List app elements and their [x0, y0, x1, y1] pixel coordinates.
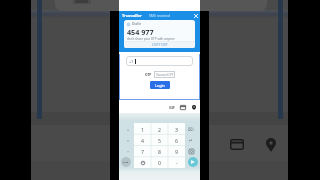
staticText: 0	[158, 159, 161, 166]
staticText: SMS received	[149, 13, 171, 18]
staticText: ÷	[127, 149, 130, 154]
staticText: 6	[175, 137, 178, 144]
staticText: GIF	[169, 105, 175, 110]
staticText: 3	[175, 126, 178, 133]
button[interactable]: 2	[151, 123, 168, 135]
button[interactable]: 9	[168, 146, 185, 157]
button[interactable]: GIF	[168, 103, 176, 111]
staticText: ↵	[189, 138, 193, 143]
button[interactable]: Emoji	[134, 157, 151, 168]
staticText: +1	[129, 59, 134, 64]
button[interactable]: COPY OTP	[124, 42, 195, 48]
staticText: ×	[127, 138, 130, 143]
staticText: Truecaller	[122, 13, 142, 18]
staticText: 4	[141, 137, 144, 144]
button[interactable]: Backspace	[185, 123, 197, 135]
staticText: don't share your OTP with anyone	[127, 37, 175, 41]
staticText: 1	[141, 126, 144, 133]
staticText: +	[127, 127, 130, 132]
staticText: ?123	[123, 161, 129, 164]
staticText: COPY OTP	[152, 43, 168, 47]
button[interactable]: Close	[193, 13, 198, 18]
button[interactable]: Location	[190, 103, 198, 111]
button[interactable]: +1	[126, 56, 193, 66]
staticText: Password OTP	[156, 73, 174, 77]
button[interactable]: Login	[150, 81, 170, 89]
staticText: 8	[158, 148, 161, 155]
staticText: 2	[158, 126, 161, 133]
button[interactable]: 6	[168, 135, 185, 146]
button[interactable]: -	[168, 157, 185, 168]
staticText: Login	[155, 83, 165, 88]
staticText: 9	[175, 148, 178, 155]
button[interactable]: 8	[151, 146, 168, 157]
button[interactable]: 0	[151, 157, 168, 168]
button[interactable]: Truecaller	[119, 11, 200, 20]
button[interactable]: +	[123, 123, 134, 135]
staticText: Dial'in	[132, 22, 142, 26]
button[interactable]: 1	[134, 123, 151, 135]
button[interactable]: 7	[134, 146, 151, 157]
button[interactable]: 5	[151, 135, 168, 146]
button[interactable]: Send	[188, 157, 198, 167]
staticText: OTP	[145, 73, 152, 77]
button[interactable]: Password OTP	[154, 71, 175, 78]
staticText: ⌦	[188, 127, 194, 132]
button[interactable]: ×	[123, 135, 134, 146]
staticText: 5	[158, 137, 161, 144]
button[interactable]: 4	[134, 135, 151, 146]
button[interactable]: Clipboard	[179, 103, 187, 111]
button[interactable]: Return	[185, 135, 197, 146]
button[interactable]: 3	[168, 123, 185, 135]
button[interactable]: ÷	[123, 146, 134, 157]
staticText: 454 977	[127, 27, 154, 37]
staticText: 7	[141, 148, 144, 155]
staticText: -	[176, 159, 178, 166]
button[interactable]: Camera	[185, 146, 197, 157]
button[interactable]: Symbols	[121, 157, 131, 167]
